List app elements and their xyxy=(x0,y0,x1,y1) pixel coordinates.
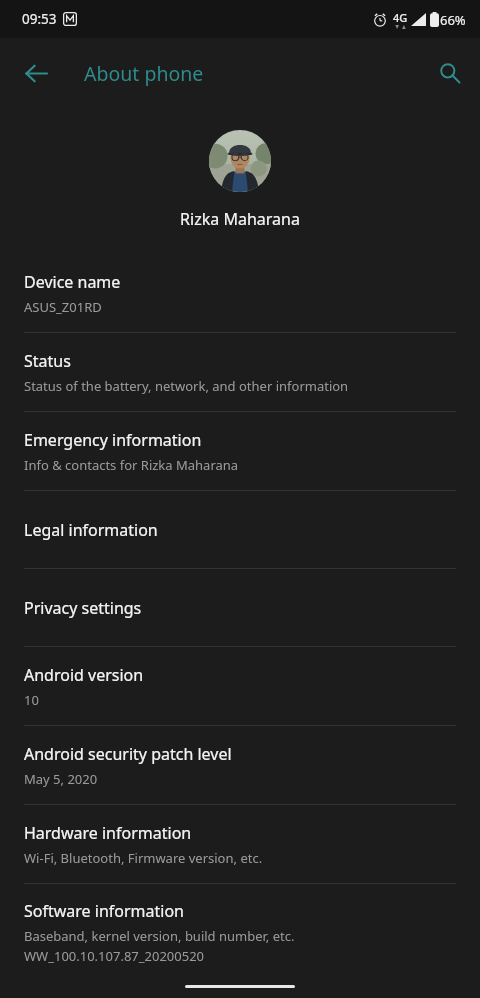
staticText: Status of the battery, network, and othe… xyxy=(24,377,349,395)
staticText: Info & contacts for Rizka Maharana xyxy=(24,456,239,474)
button[interactable]: Android version xyxy=(0,647,480,725)
staticText: Privacy settings xyxy=(24,597,142,619)
staticText: Hardware information xyxy=(24,822,192,844)
staticText: 4G xyxy=(393,10,408,25)
button[interactable]: Emergency information xyxy=(0,412,480,490)
staticText: ASUS_Z01RD xyxy=(24,298,102,316)
staticText: Android security patch level xyxy=(24,743,232,765)
staticText: 09:53 xyxy=(22,10,57,28)
staticText: Baseband, kernel version, build number, … xyxy=(24,927,295,945)
staticText: Status xyxy=(24,350,71,372)
staticText: Legal information xyxy=(24,519,158,541)
staticText: 66% xyxy=(440,11,466,29)
button[interactable]: Android security patch level xyxy=(0,726,480,804)
staticText: Rizka Maharana xyxy=(180,208,300,230)
staticText: Wi-Fi, Bluetooth, Firmware version, etc. xyxy=(24,849,263,867)
button[interactable]: Software information xyxy=(0,884,480,980)
staticText: About phone xyxy=(84,60,204,87)
staticText: May 5, 2020 xyxy=(24,770,98,788)
staticText: Android version xyxy=(24,664,144,686)
button[interactable]: Back xyxy=(12,49,60,97)
button[interactable]: Rizka Maharana xyxy=(0,108,480,230)
staticText: WW_100.10.107.87_20200520 xyxy=(24,947,205,965)
button[interactable]: Hardware information xyxy=(0,805,480,883)
button[interactable]: Device name xyxy=(0,254,480,332)
button[interactable]: Privacy settings xyxy=(0,569,480,646)
button[interactable]: Legal information xyxy=(0,491,480,568)
button[interactable]: Status xyxy=(0,333,480,411)
staticText: Emergency information xyxy=(24,429,202,451)
staticText: 10 xyxy=(24,691,39,709)
staticText: Software information xyxy=(24,900,184,922)
staticText: Device name xyxy=(24,271,121,293)
button[interactable]: Search xyxy=(426,49,474,97)
